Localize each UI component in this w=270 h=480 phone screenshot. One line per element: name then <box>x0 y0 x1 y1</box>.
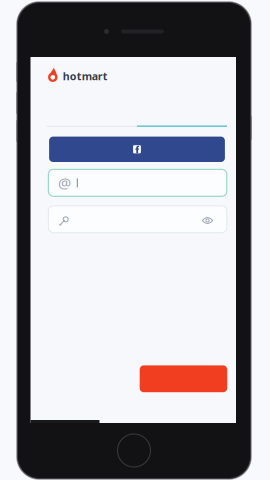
button[interactable]: Continue with Facebook <box>49 137 225 162</box>
button[interactable]: Sign in <box>140 365 227 392</box>
button[interactable]: Email <box>48 169 227 196</box>
staticText: @ <box>58 173 71 192</box>
staticText: hotmart <box>63 69 108 83</box>
button[interactable]: Password <box>48 206 227 233</box>
